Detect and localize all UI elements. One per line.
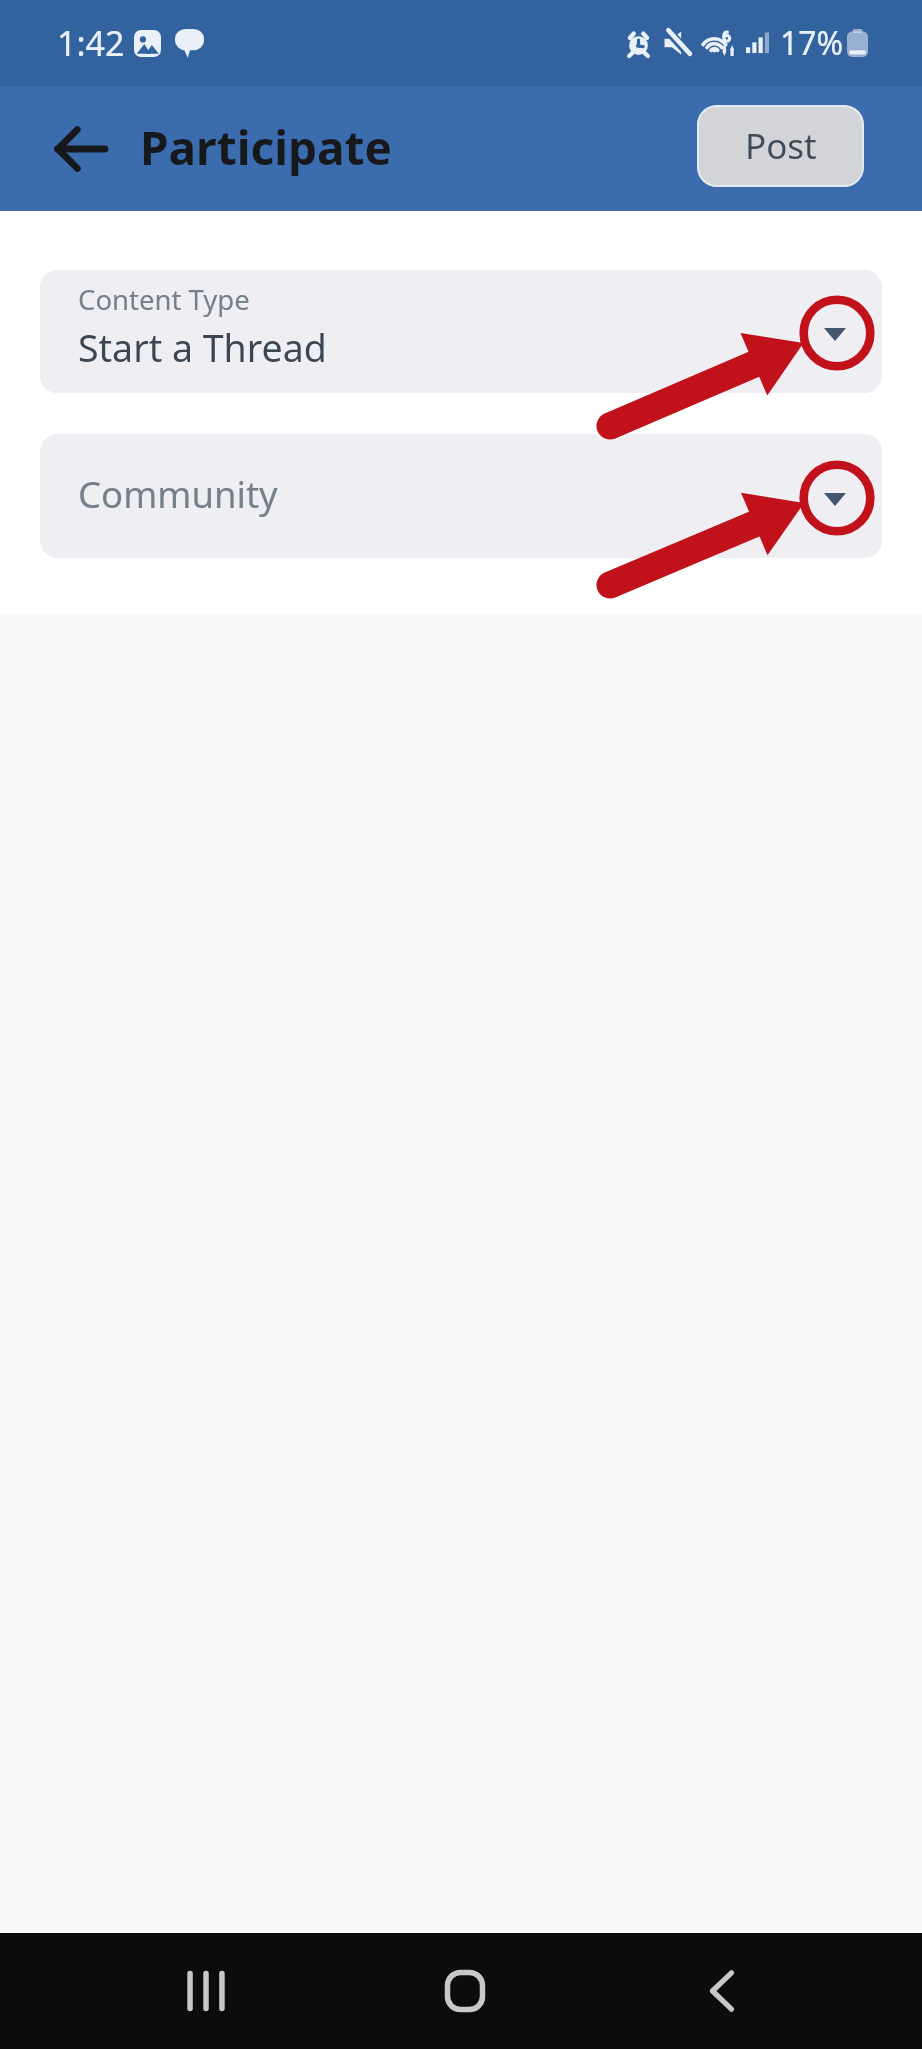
staticText: Post <box>745 122 817 170</box>
staticText: Community <box>78 469 278 519</box>
button[interactable]: Back <box>677 1946 767 2036</box>
staticText: 17% <box>780 21 844 65</box>
button[interactable]: Recent apps <box>161 1946 251 2036</box>
staticText: Start a Thread <box>78 322 327 373</box>
button[interactable]: Home <box>420 1946 510 2036</box>
button[interactable]: Community <box>40 434 882 558</box>
staticText: Participate <box>140 116 392 179</box>
button[interactable]: Back <box>36 105 124 193</box>
button[interactable]: Content Type <box>40 270 882 393</box>
button[interactable]: Post <box>697 105 864 187</box>
staticText: 1:42 <box>57 20 125 66</box>
staticText: Content Type <box>78 281 250 318</box>
